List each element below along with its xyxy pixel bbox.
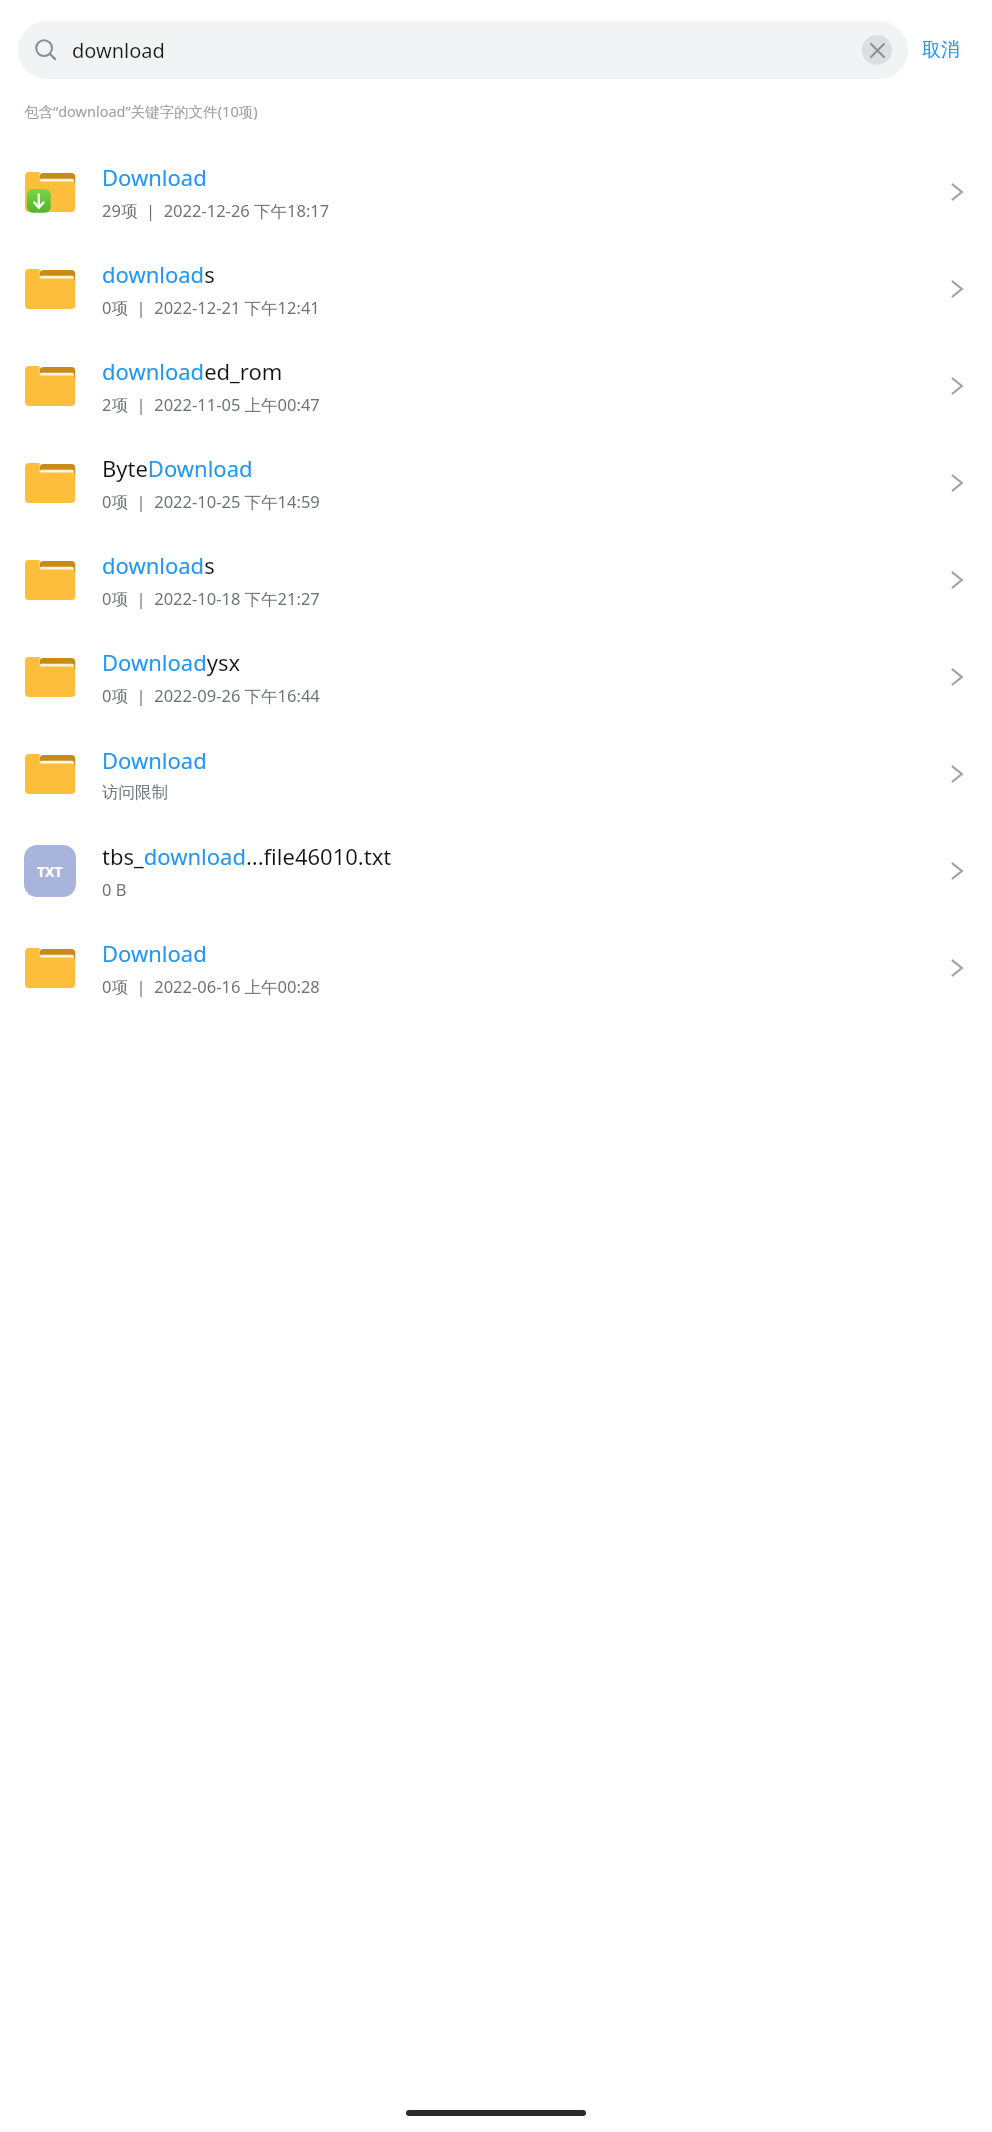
staticText: TXT xyxy=(37,862,63,881)
button[interactable]: Download xyxy=(0,143,992,240)
staticText: 访问限制 xyxy=(102,782,168,803)
staticText: 0项 | 2022-10-18 下午21:27 xyxy=(102,587,320,610)
staticText: Download xyxy=(102,162,207,192)
button[interactable]: Download xyxy=(0,725,992,822)
staticText: 包含“download”关键字的文件(10项) xyxy=(24,101,258,121)
other: Open xyxy=(946,181,968,203)
other: Open xyxy=(946,472,968,494)
staticText: 0项 | 2022-06-16 上午00:28 xyxy=(102,975,320,998)
button[interactable]: download xyxy=(18,21,908,79)
other: Open xyxy=(946,860,968,882)
button[interactable]: TXT xyxy=(0,822,992,919)
staticText: downloads xyxy=(102,550,215,580)
button[interactable]: downloaded_rom xyxy=(0,337,992,434)
other: Open xyxy=(946,957,968,979)
staticText: Download xyxy=(102,745,207,775)
staticText: 0 B xyxy=(102,878,127,900)
staticText: Download xyxy=(102,938,207,968)
staticText: Downloadysx xyxy=(102,647,241,677)
other: Open xyxy=(946,763,968,785)
button[interactable]: downloads xyxy=(0,240,992,337)
button[interactable]: ByteDownload xyxy=(0,434,992,531)
button[interactable]: 取消 xyxy=(908,28,974,72)
staticText: 0项 | 2022-12-21 下午12:41 xyxy=(102,296,320,319)
staticText: download xyxy=(72,37,862,64)
button[interactable]: Clear search xyxy=(862,35,892,65)
staticText: 取消 xyxy=(922,38,960,62)
button[interactable]: downloads xyxy=(0,531,992,628)
staticText: downloaded_rom xyxy=(102,356,283,386)
button[interactable]: Download xyxy=(0,919,992,1016)
staticText: 2项 | 2022-11-05 上午00:47 xyxy=(102,393,320,416)
other: Open xyxy=(946,375,968,397)
staticText: tbs_download...file46010.txt xyxy=(102,841,392,871)
staticText: 0项 | 2022-10-25 下午14:59 xyxy=(102,490,320,513)
staticText: 0项 | 2022-09-26 下午16:44 xyxy=(102,684,320,707)
other: Open xyxy=(946,569,968,591)
staticText: downloads xyxy=(102,259,215,289)
button[interactable]: Downloadysx xyxy=(0,628,992,725)
other: Open xyxy=(946,278,968,300)
other: Open xyxy=(946,666,968,688)
staticText: ByteDownload xyxy=(102,453,253,483)
staticText: 29项 | 2022-12-26 下午18:17 xyxy=(102,199,330,222)
